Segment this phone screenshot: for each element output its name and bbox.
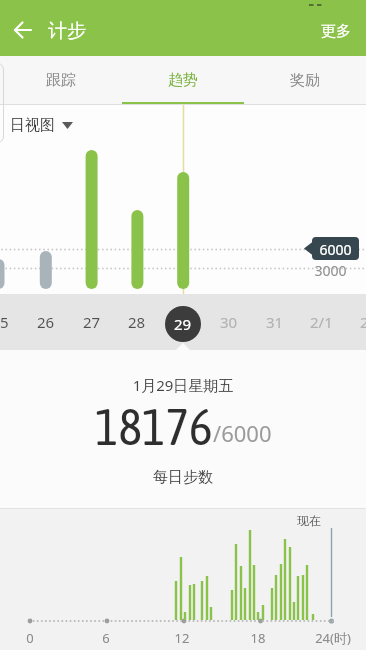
staticText: 更多 xyxy=(321,22,351,41)
staticText: 日视图 xyxy=(10,116,55,135)
staticText: 18 xyxy=(238,629,278,647)
staticText: 28 xyxy=(128,312,146,332)
staticText: 现在 xyxy=(287,513,331,528)
button[interactable]: 奖励 xyxy=(244,56,366,105)
staticText: 每日步数 xyxy=(0,468,366,487)
staticText: 3000 xyxy=(307,261,354,280)
staticText: 趋势 xyxy=(168,71,198,90)
button[interactable]: 2/1 xyxy=(298,294,344,350)
staticText: 27 xyxy=(83,312,101,332)
button[interactable]: 2 xyxy=(341,294,366,350)
button[interactable]: 28 xyxy=(114,294,160,350)
button[interactable]: 26 xyxy=(23,294,69,350)
staticText: 29 xyxy=(174,314,192,334)
staticText: 5 xyxy=(0,312,9,332)
staticText: 30 xyxy=(220,312,238,332)
staticText: 18176 xyxy=(95,398,213,455)
button[interactable]: 31 xyxy=(252,294,298,350)
button[interactable]: 29 xyxy=(165,306,201,342)
staticText: 跟踪 xyxy=(46,71,76,90)
button[interactable]: 日视图 xyxy=(6,110,77,140)
staticText: 奖励 xyxy=(290,71,320,90)
staticText: 6 xyxy=(86,629,126,647)
staticText: 31 xyxy=(266,312,284,332)
button[interactable] xyxy=(5,12,41,48)
staticText: /6000 xyxy=(213,418,272,448)
button[interactable]: 跟踪 xyxy=(0,56,122,105)
staticText: 6000 xyxy=(312,240,359,259)
staticText: 26 xyxy=(37,312,55,332)
staticText: 计步 xyxy=(48,19,86,43)
staticText: 2/1 xyxy=(310,312,333,332)
staticText: 0 xyxy=(10,629,50,647)
button[interactable]: 27 xyxy=(69,294,115,350)
staticText: 12 xyxy=(162,629,202,647)
staticText: 24(时) xyxy=(303,629,363,647)
button[interactable]: 5 xyxy=(0,294,27,350)
staticText: 2 xyxy=(360,312,366,332)
button[interactable]: 趋势 xyxy=(122,56,244,105)
staticText: 1月29日星期五 xyxy=(0,375,366,395)
button[interactable]: 更多 xyxy=(310,14,362,48)
button[interactable]: 30 xyxy=(206,294,252,350)
